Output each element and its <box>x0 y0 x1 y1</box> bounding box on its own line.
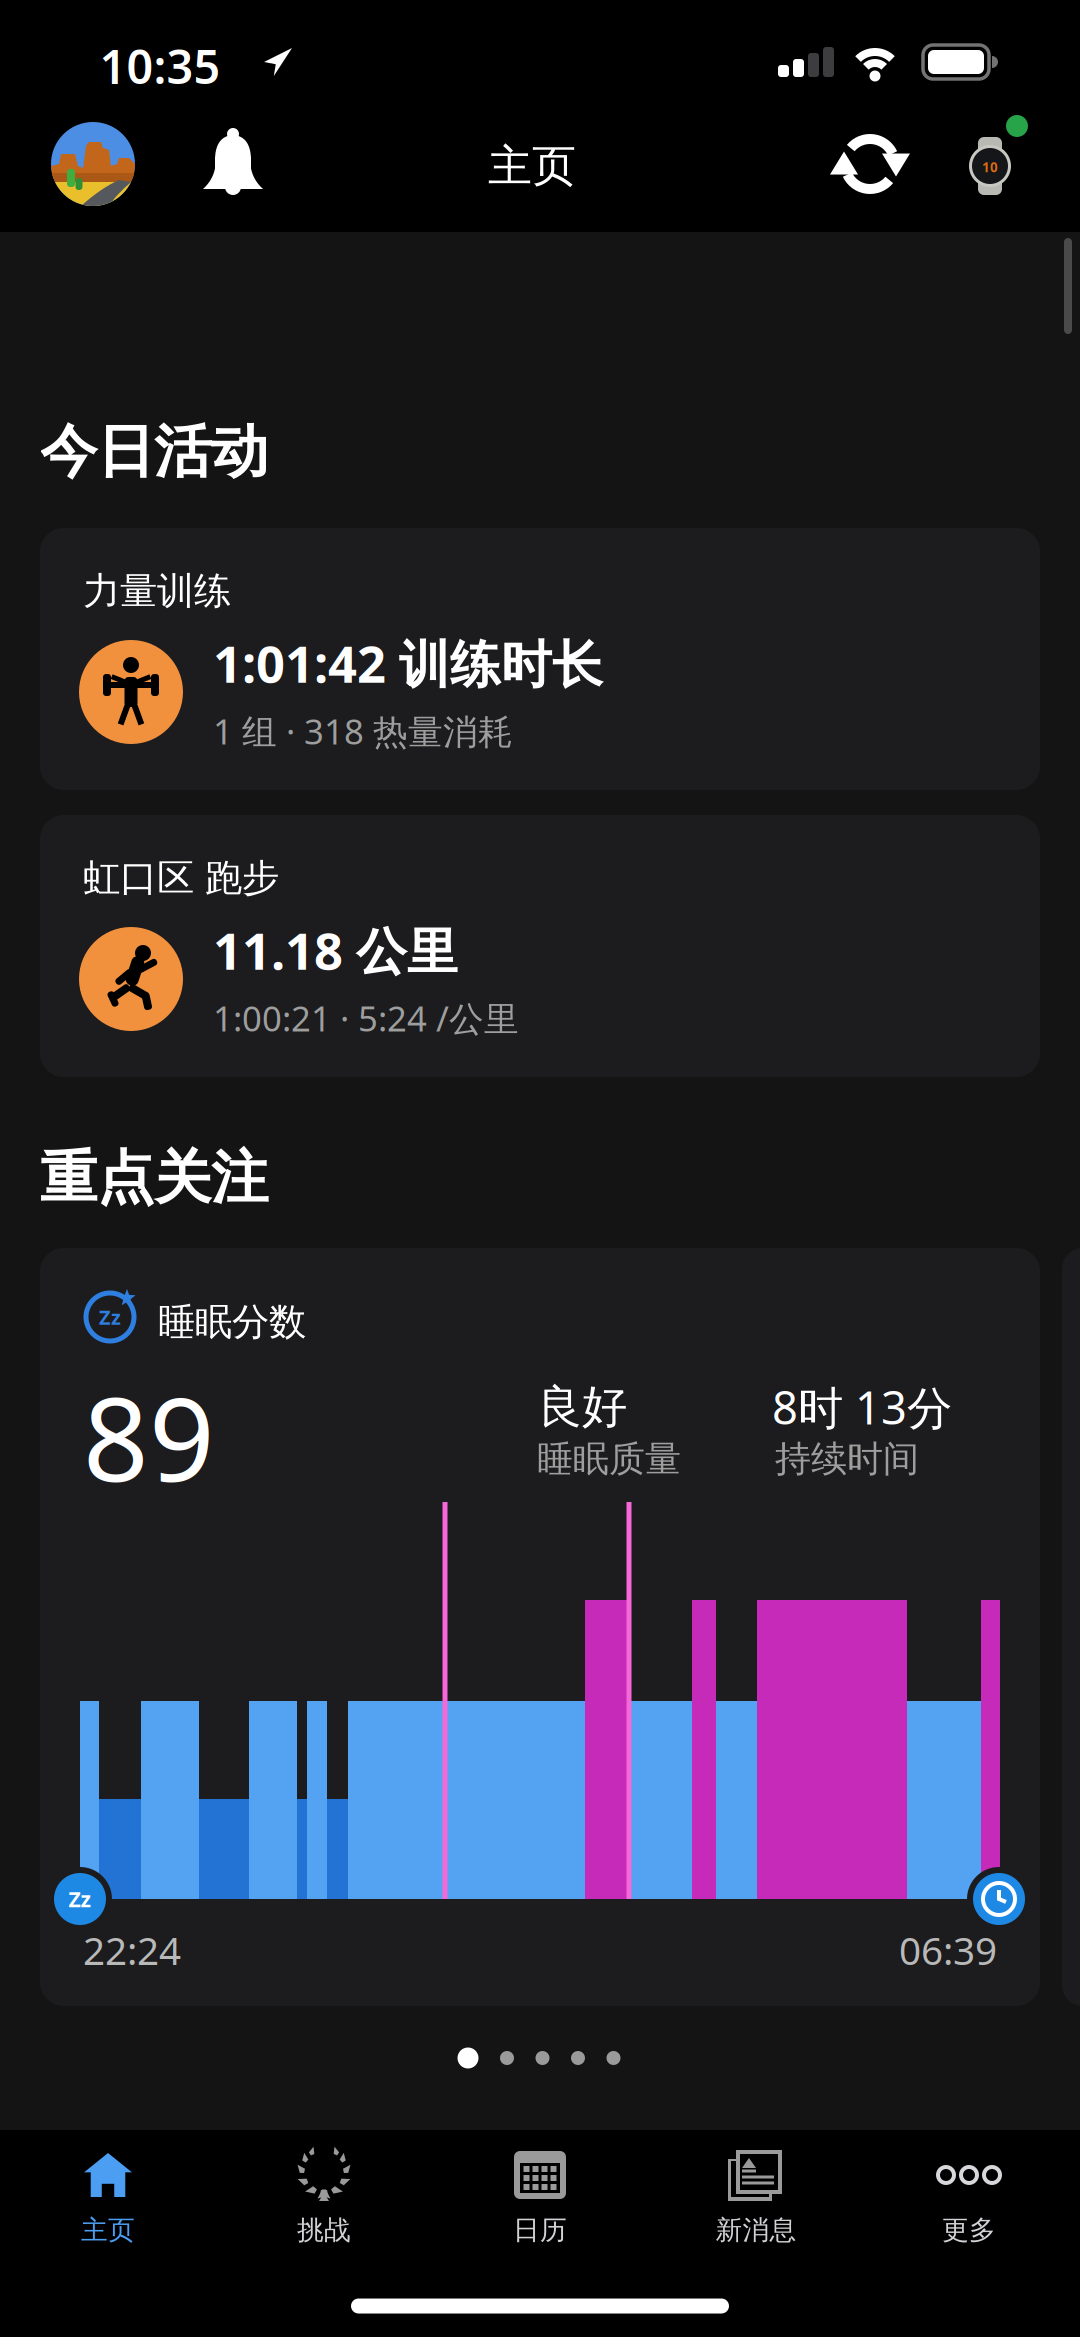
button[interactable]: 力量训练 <box>40 528 1040 790</box>
button[interactable]: 更多 <box>869 2142 1069 2262</box>
staticText: 新消息 <box>715 2214 796 2246</box>
staticText: 10 <box>982 158 998 176</box>
button[interactable]: 主页 <box>8 2142 208 2262</box>
staticText: 良好 <box>537 1379 627 1435</box>
staticText: 挑战 <box>297 2214 351 2246</box>
staticText: 11.18 公里 <box>213 916 458 984</box>
staticText: 1:01:42 训练时长 <box>213 629 603 697</box>
staticText: 主页 <box>81 2214 135 2246</box>
staticText: 1 组 · 318 热量消耗 <box>213 708 513 754</box>
staticText: 06:39 <box>899 1924 997 1976</box>
staticText: 主页 <box>488 139 576 193</box>
staticText: Zz <box>99 1304 121 1330</box>
button[interactable]: Zz <box>40 1248 1040 2006</box>
button[interactable]: 10 <box>945 112 1035 208</box>
staticText: Zz <box>68 1885 91 1913</box>
staticText: 日历 <box>513 2214 567 2246</box>
staticText: 睡眠分数 <box>158 1299 306 1345</box>
staticText: 睡眠质量 <box>537 1437 681 1481</box>
staticText: 89 <box>83 1361 215 1513</box>
staticText: 重点关注 <box>40 1143 268 1213</box>
staticText: 22:24 <box>83 1924 181 1976</box>
button[interactable] <box>193 122 273 202</box>
staticText: 持续时间 <box>775 1437 919 1481</box>
button[interactable] <box>51 122 135 206</box>
staticText: 力量训练 <box>83 568 231 614</box>
staticText: 今日活动 <box>40 417 268 487</box>
staticText: 10:35 <box>99 35 220 97</box>
staticText: 虹口区 跑步 <box>83 855 279 901</box>
button[interactable]: 挑战 <box>224 2142 424 2262</box>
button[interactable]: 新消息 <box>656 2142 856 2262</box>
button[interactable]: 日历 <box>440 2142 640 2262</box>
staticText: 更多 <box>942 2214 996 2246</box>
button[interactable]: 虹口区 跑步 <box>40 815 1040 1077</box>
button[interactable] <box>822 116 918 212</box>
staticText: 1:00:21 · 5:24 /公里 <box>213 995 519 1041</box>
staticText: 8时 13分 <box>772 1377 952 1437</box>
